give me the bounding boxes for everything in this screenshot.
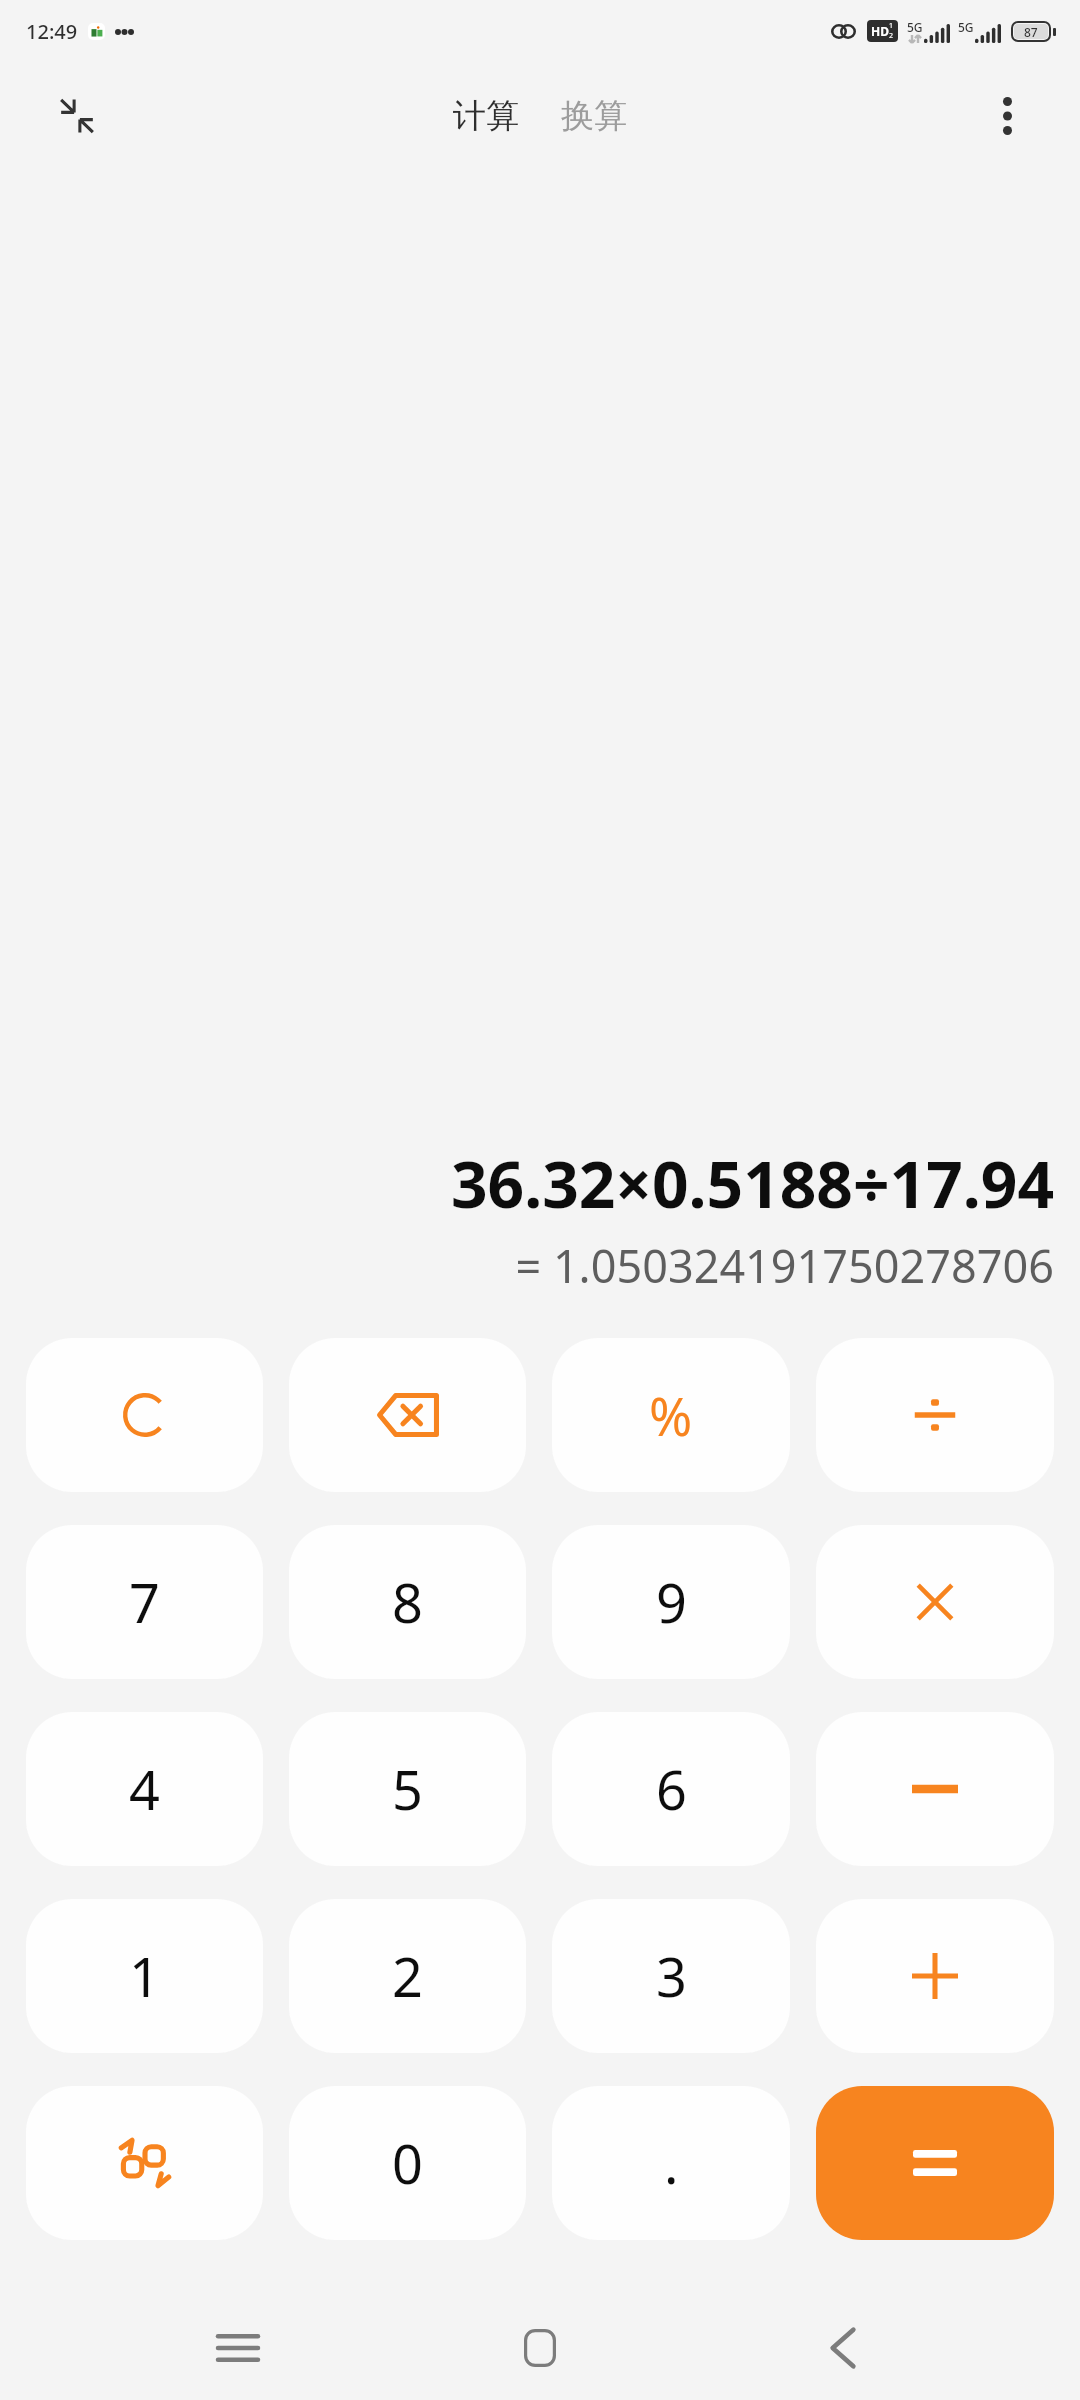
button[interactable]: Divide bbox=[816, 1338, 1054, 1492]
button[interactable]: Multiply bbox=[816, 1525, 1054, 1679]
staticText: 0 bbox=[392, 2126, 423, 2200]
staticText: 9 bbox=[656, 1565, 687, 1639]
button[interactable]: 5 bbox=[289, 1712, 526, 1866]
button[interactable]: 6 bbox=[552, 1712, 790, 1866]
button[interactable]: . bbox=[552, 2086, 790, 2240]
button[interactable]: 4 bbox=[26, 1712, 263, 1866]
button[interactable]: 计算 bbox=[441, 87, 531, 145]
staticText: 5 bbox=[392, 1752, 423, 1826]
staticText: 3 bbox=[656, 1939, 687, 2013]
staticText: 12:49 bbox=[26, 18, 78, 45]
staticText: 5G bbox=[958, 19, 974, 35]
button[interactable]: Equals bbox=[816, 2086, 1054, 2240]
button[interactable]: Scientific bbox=[26, 2086, 263, 2240]
staticText: % bbox=[649, 1380, 693, 1451]
button[interactable]: Home bbox=[475, 2308, 605, 2388]
staticText: HD bbox=[871, 23, 889, 39]
button[interactable]: Collapse window bbox=[44, 83, 110, 149]
button[interactable]: 7 bbox=[26, 1525, 263, 1679]
staticText: 1 bbox=[889, 21, 894, 31]
staticText: 计算 bbox=[453, 95, 519, 137]
button[interactable]: Percent bbox=[552, 1338, 790, 1492]
button[interactable]: More options bbox=[974, 83, 1040, 149]
button[interactable]: 8 bbox=[289, 1525, 526, 1679]
staticText: 87 bbox=[1024, 24, 1038, 39]
button[interactable]: Backspace bbox=[289, 1338, 526, 1492]
staticText: 7 bbox=[129, 1565, 160, 1639]
staticText: 36.32×0.5188÷17.94 bbox=[450, 1140, 1054, 1227]
staticText: 8 bbox=[392, 1565, 423, 1639]
button[interactable]: Back bbox=[778, 2308, 908, 2388]
staticText: 5G bbox=[907, 19, 923, 35]
staticText: . bbox=[664, 2126, 679, 2200]
staticText: 2 bbox=[889, 31, 894, 41]
button[interactable]: 2 bbox=[289, 1899, 526, 2053]
button[interactable]: 9 bbox=[552, 1525, 790, 1679]
staticText: 1 bbox=[129, 1939, 160, 2013]
button[interactable]: 3 bbox=[552, 1899, 790, 2053]
button[interactable]: Clear bbox=[26, 1338, 263, 1492]
staticText: 2 bbox=[392, 1939, 423, 2013]
staticText: 4 bbox=[129, 1752, 160, 1826]
staticText: = 1.050324191750278706 bbox=[515, 1235, 1054, 1296]
button[interactable]: 0 bbox=[289, 2086, 526, 2240]
button[interactable]: Plus bbox=[816, 1899, 1054, 2053]
staticText: 换算 bbox=[561, 95, 627, 137]
button[interactable]: Recent apps bbox=[173, 2308, 303, 2388]
staticText: 6 bbox=[656, 1752, 687, 1826]
button[interactable]: 1 bbox=[26, 1899, 263, 2053]
button[interactable]: 换算 bbox=[549, 87, 639, 145]
button[interactable]: Minus bbox=[816, 1712, 1054, 1866]
